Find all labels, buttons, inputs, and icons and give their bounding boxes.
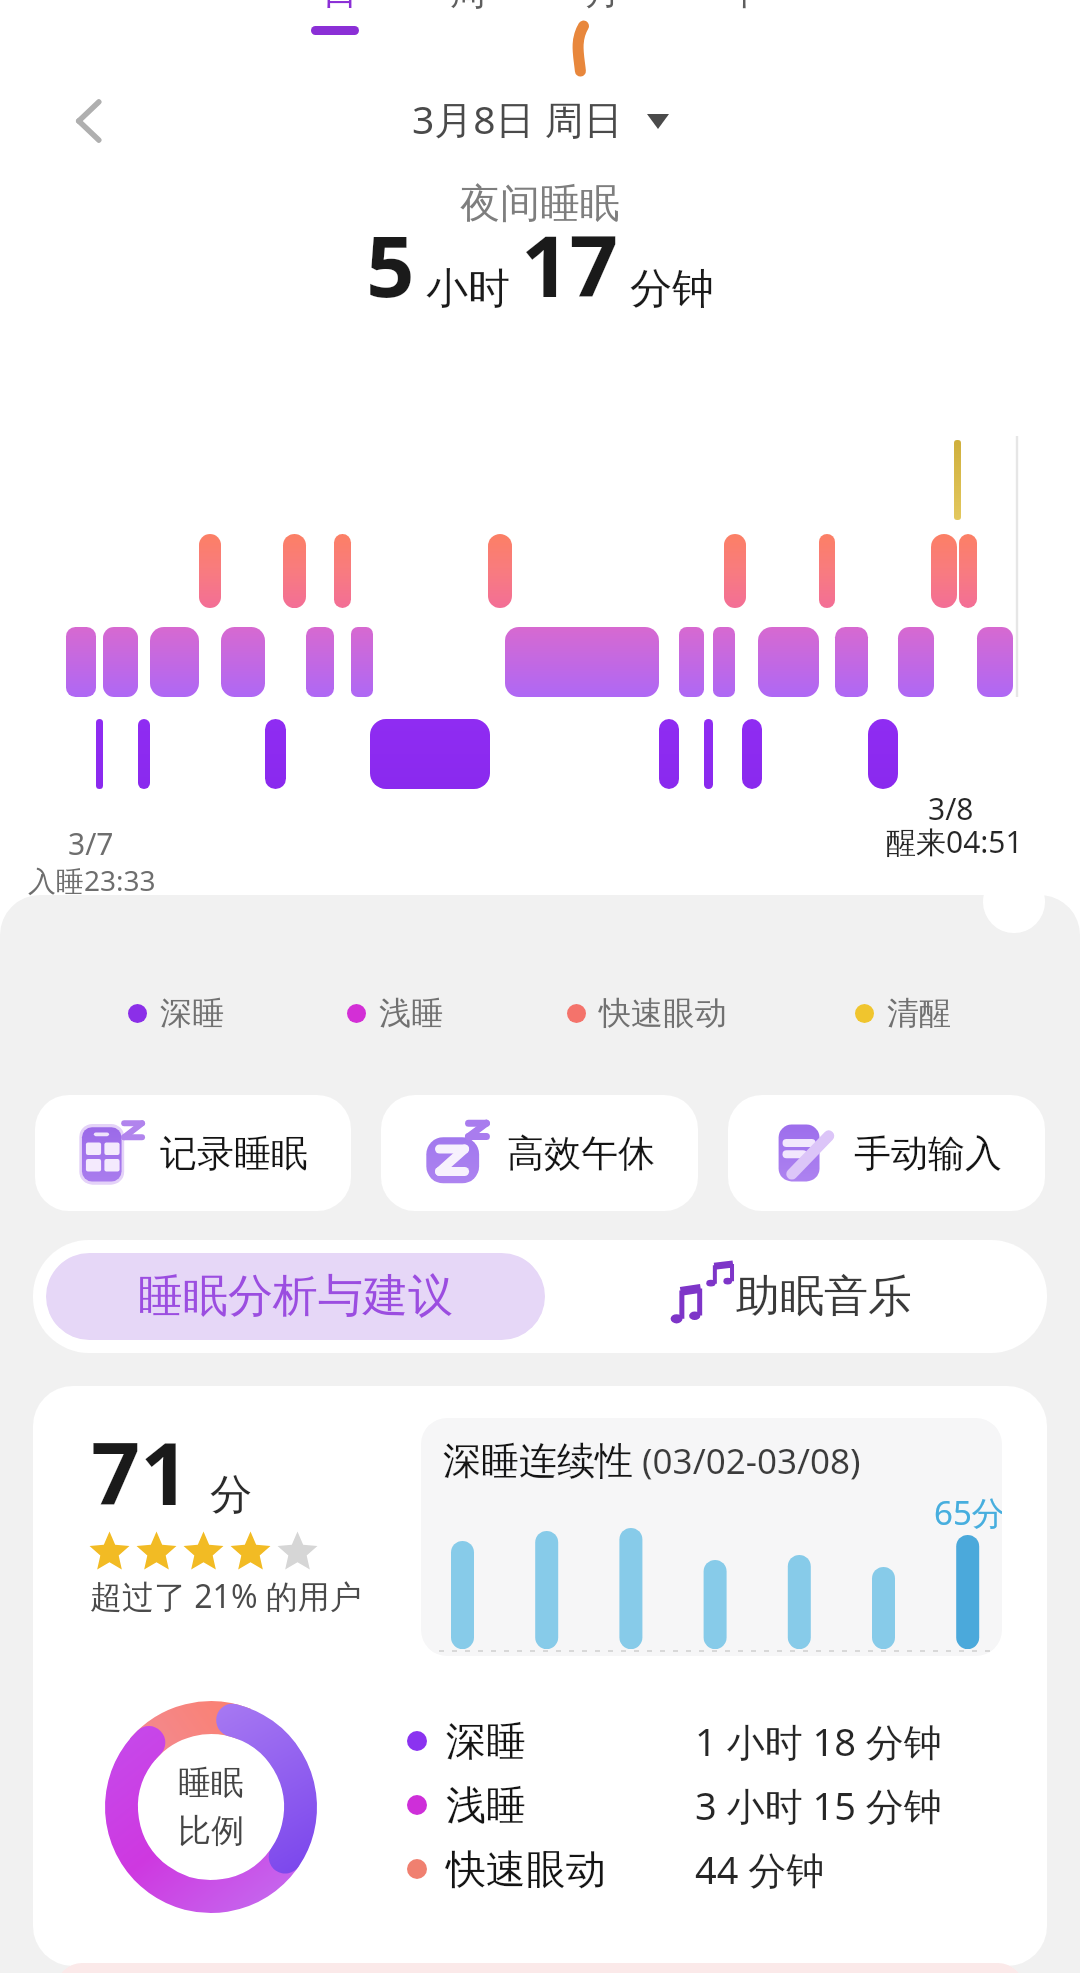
staticText: 3 小时 15 分钟 [695,1779,942,1831]
staticText: 深睡 [446,1716,526,1766]
staticText: 17 [521,206,619,322]
staticText: 3月8日 周日 [412,92,623,145]
button[interactable]: 助眠音乐 [545,1253,1034,1340]
staticText: 71 [91,1413,190,1530]
staticText: 65分 [934,1490,1002,1535]
staticText: 记录睡眠 [160,1130,308,1177]
staticText: 夜间睡眠 [460,178,620,228]
staticText: 高效午休 [507,1130,655,1177]
staticText: 助眠音乐 [736,1269,912,1324]
staticText: 入睡23:33 [28,861,156,899]
staticText: 手动输入 [854,1130,1002,1177]
staticText: 分 [210,1469,252,1522]
staticText: 比例 [178,1810,244,1852]
staticText: 深睡连续性 [443,1437,633,1485]
staticText: 快速眼动 [446,1844,606,1894]
staticText: 3/7 [68,823,114,864]
button[interactable]: 年 [720,0,766,21]
staticText: 44 分钟 [695,1843,825,1895]
staticText: 年 [725,0,761,14]
staticText: 醒来04:51 [886,821,1023,862]
button[interactable]: 3月8日 周日 [412,92,669,145]
staticText: 1 小时 18 分钟 [695,1715,942,1767]
staticText: 3/8 [928,788,974,829]
button[interactable]: 记录睡眠 [35,1095,351,1211]
staticText: 浅睡 [446,1780,526,1830]
staticText: 小时 [415,258,521,315]
button[interactable]: 周 [445,0,491,21]
button[interactable]: 高效午休 [381,1095,698,1211]
staticText: 深睡 [160,993,224,1033]
staticText: 5 [366,206,415,322]
staticText: 清醒 [887,993,951,1033]
staticText: (03/02-03/08) [633,1437,861,1485]
staticText: 分钟 [619,258,714,315]
staticText: 周 [450,0,486,14]
button[interactable]: 日 [317,0,363,21]
staticText: 超过了 21% 的用户 [90,1574,362,1618]
staticText: 快速眼动 [599,993,727,1033]
staticText: 睡眠 [178,1762,244,1804]
button[interactable]: 睡眠分析与建议 [46,1253,545,1340]
button[interactable]: 手动输入 [728,1095,1045,1211]
staticText: 月 [585,0,621,14]
button[interactable]: Back [62,90,124,152]
staticText: 浅睡 [379,993,443,1033]
staticText: 睡眠分析与建议 [138,1268,453,1325]
staticText: 日 [322,0,358,14]
button[interactable]: 月 [580,0,626,21]
